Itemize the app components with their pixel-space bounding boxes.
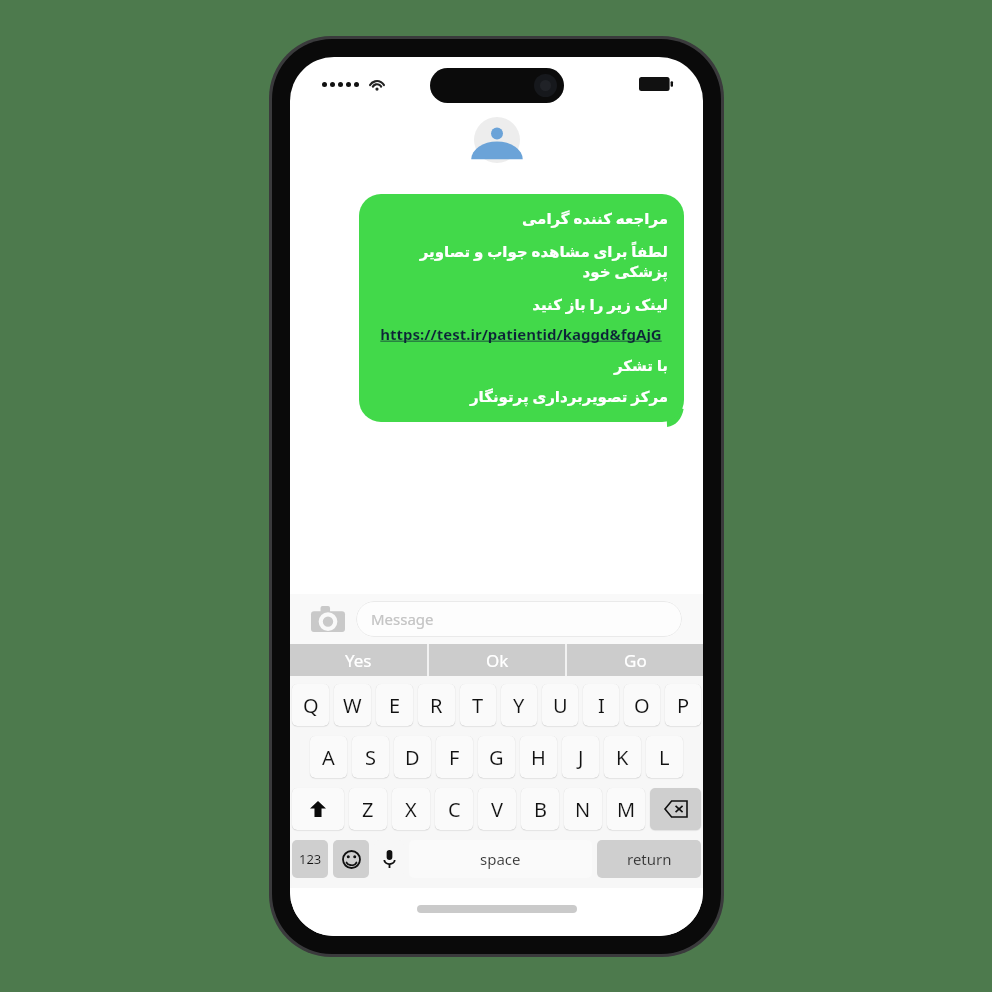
button[interactable]: return — [597, 840, 701, 878]
staticText: 123 — [299, 850, 322, 868]
staticText: G — [489, 744, 504, 771]
staticText: M — [617, 796, 636, 823]
staticText: T — [472, 692, 484, 719]
staticText: O — [634, 692, 650, 719]
button[interactable]: R — [418, 684, 455, 726]
button[interactable]: Shift — [292, 788, 344, 830]
staticText: H — [531, 744, 546, 771]
staticText: X — [405, 796, 417, 823]
button[interactable]: https://test.ir/patientid/kaggd&fgAjG — [380, 324, 662, 344]
button[interactable]: A — [310, 736, 347, 778]
button[interactable]: Message — [356, 601, 682, 637]
staticText: return — [627, 849, 672, 869]
staticText: J — [578, 744, 584, 771]
button[interactable]: مراجعه کننده گرامی — [359, 194, 684, 422]
button[interactable]: H — [520, 736, 557, 778]
button[interactable]: Camera — [308, 599, 348, 639]
button[interactable]: B — [521, 788, 559, 830]
staticText: Go — [624, 649, 647, 672]
staticText: N — [575, 796, 591, 823]
button[interactable]: Q — [292, 684, 329, 726]
staticText: لطفاً برای مشاهده جواب و تصاویر پزشکی خو… — [373, 241, 668, 281]
staticText: P — [677, 692, 690, 719]
staticText: K — [616, 744, 629, 771]
button[interactable]: P — [665, 684, 701, 726]
staticText: A — [322, 744, 335, 771]
staticText: I — [598, 692, 605, 719]
button[interactable]: S — [352, 736, 389, 778]
button[interactable]: M — [607, 788, 645, 830]
staticText: لینک زیر را باز کنید — [373, 294, 668, 314]
staticText: B — [534, 796, 547, 823]
button[interactable]: 123 — [292, 840, 328, 878]
button[interactable]: L — [646, 736, 683, 778]
staticText: S — [365, 744, 376, 771]
staticText: Yes — [345, 649, 372, 672]
staticText: D — [405, 744, 420, 771]
button[interactable]: I — [583, 684, 619, 726]
staticText: C — [448, 796, 461, 823]
staticText: Z — [362, 796, 374, 823]
button[interactable]: Backspace — [650, 788, 701, 830]
staticText: R — [430, 692, 443, 719]
button[interactable]: Go — [567, 644, 703, 676]
button[interactable]: K — [604, 736, 641, 778]
staticText: V — [491, 796, 503, 823]
staticText: W — [343, 692, 362, 719]
button[interactable]: T — [460, 684, 496, 726]
button[interactable]: Ok — [429, 644, 565, 676]
staticText: E — [389, 692, 401, 719]
button[interactable]: Y — [501, 684, 537, 726]
staticText: با تشکر — [373, 355, 668, 375]
button[interactable]: Yes — [290, 644, 427, 676]
button[interactable]: V — [478, 788, 516, 830]
button[interactable]: O — [624, 684, 660, 726]
staticText: Ok — [486, 649, 509, 672]
button[interactable]: C — [435, 788, 473, 830]
staticText: Y — [513, 692, 525, 719]
button[interactable]: Microphone — [374, 840, 404, 878]
button[interactable]: Emoji — [333, 840, 369, 878]
staticText: F — [449, 744, 460, 771]
staticText: Q — [303, 692, 319, 719]
button[interactable]: Z — [349, 788, 387, 830]
staticText: مراجعه کننده گرامی — [373, 208, 668, 228]
staticText: مرکز تصویربرداری پرتونگار — [373, 386, 668, 406]
button[interactable]: N — [564, 788, 602, 830]
staticText: U — [553, 692, 568, 719]
button[interactable]: X — [392, 788, 430, 830]
staticText: L — [659, 744, 670, 771]
button[interactable]: E — [376, 684, 413, 726]
button[interactable]: U — [542, 684, 578, 726]
button[interactable]: D — [394, 736, 431, 778]
staticText: Message — [371, 609, 434, 629]
staticText: space — [480, 849, 521, 869]
button[interactable]: G — [478, 736, 515, 778]
button[interactable]: F — [436, 736, 473, 778]
button[interactable]: space — [409, 840, 592, 878]
button[interactable]: J — [562, 736, 599, 778]
button[interactable]: W — [334, 684, 371, 726]
